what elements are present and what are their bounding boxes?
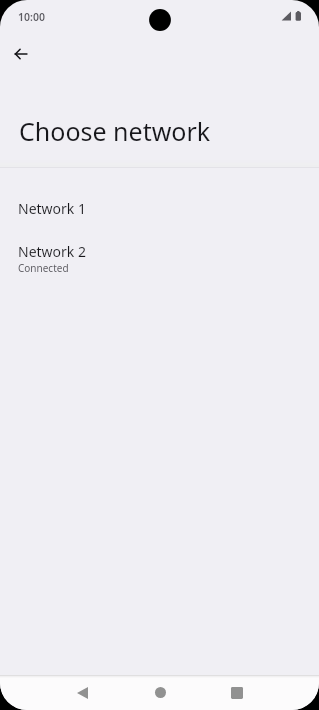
button[interactable]: Network 2 bbox=[0, 237, 319, 291]
button[interactable]: Network 1 bbox=[0, 194, 319, 237]
staticText: Connected bbox=[18, 261, 69, 275]
staticText: Choose network bbox=[19, 114, 211, 148]
staticText: Network 1 bbox=[18, 199, 86, 218]
button[interactable]: Home bbox=[136, 675, 184, 710]
button[interactable]: Navigate up bbox=[0, 33, 41, 74]
staticText: 10:00 bbox=[18, 10, 45, 24]
staticText: Network 2 bbox=[18, 242, 86, 261]
button[interactable]: Back bbox=[58, 675, 106, 710]
button[interactable]: Recent apps bbox=[213, 675, 261, 710]
